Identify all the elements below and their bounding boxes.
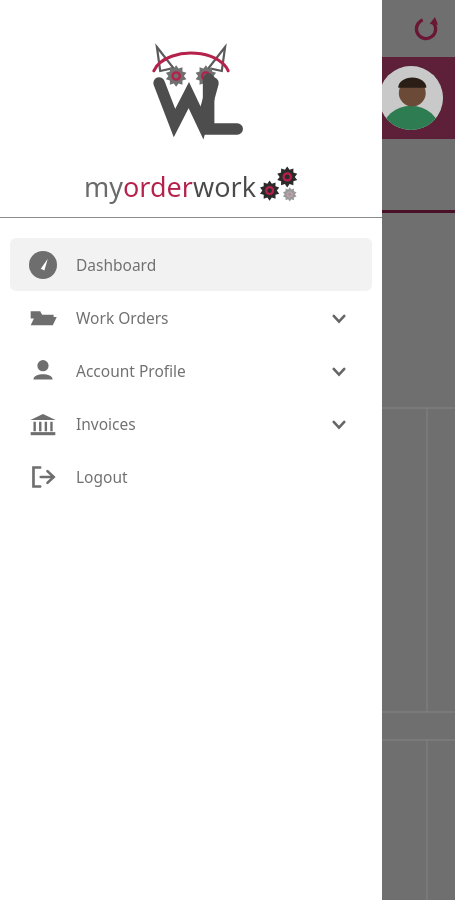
staticText: Dashboard [76, 254, 157, 275]
button[interactable]: Logout [10, 450, 372, 503]
button[interactable]: Export to Excel [6, 295, 58, 347]
staticText: Work Orders [76, 307, 169, 328]
button[interactable]: Refresh [411, 14, 441, 44]
button[interactable] [0, 219, 52, 253]
button[interactable]: Work Orders [10, 291, 372, 344]
staticText: Logout [76, 466, 128, 487]
button[interactable]: Dashboard [10, 238, 372, 291]
staticText: Invoices [76, 413, 136, 434]
staticText: Account Profile [76, 360, 186, 381]
staticText: myorderwork [84, 168, 257, 205]
button[interactable]: Invoices [10, 397, 372, 450]
button[interactable]: Account Profile [10, 344, 372, 397]
